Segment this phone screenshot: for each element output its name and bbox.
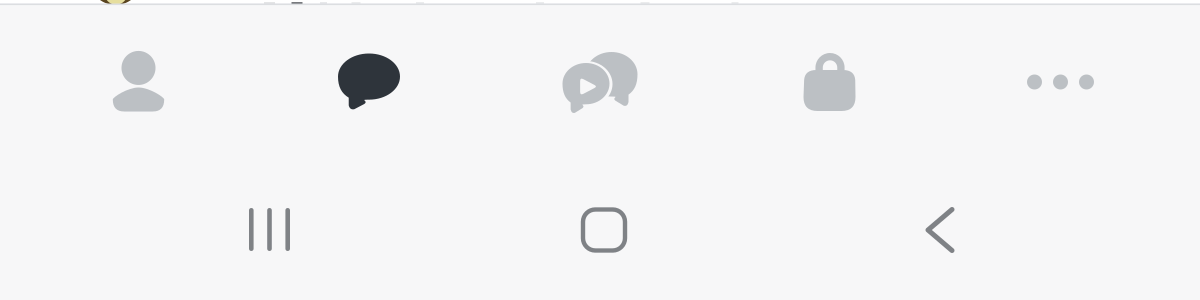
- button[interactable]: Recent apps: [119, 174, 419, 284]
- button[interactable]: More: [940, 27, 1180, 137]
- button[interactable]: Marketplace: [709, 27, 949, 137]
- button[interactable]: Updates: [480, 27, 720, 137]
- button[interactable]: Chats: [249, 27, 489, 137]
- button[interactable]: Profile: [18, 27, 258, 137]
- button[interactable]: Home: [454, 175, 754, 285]
- button[interactable]: Back: [790, 175, 1090, 285]
